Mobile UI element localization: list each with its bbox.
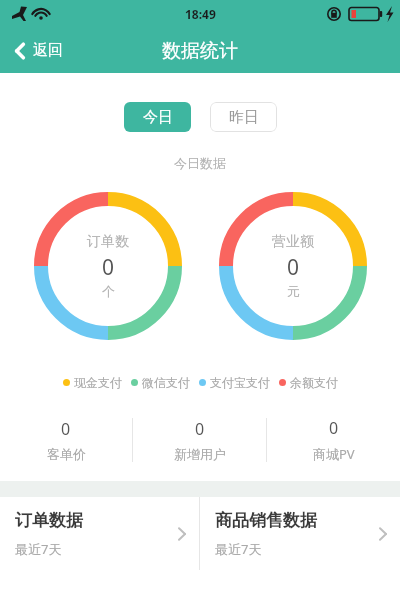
button[interactable]: 返回: [0, 28, 75, 73]
staticText: 个: [102, 283, 115, 299]
staticText: 今日数据: [0, 155, 400, 171]
other: Open 商品销售数据: [378, 525, 388, 543]
staticText: 订单数: [87, 233, 129, 251]
button[interactable]: 0: [0, 413, 132, 467]
staticText: 0: [61, 418, 71, 440]
button[interactable]: 0: [133, 413, 266, 467]
staticText: 0: [329, 417, 339, 439]
staticText: 0: [102, 253, 115, 282]
staticText: 营业额: [272, 233, 314, 251]
staticText: 余额支付: [290, 375, 338, 390]
staticText: 昨日: [229, 108, 259, 127]
staticText: 返回: [33, 41, 63, 60]
staticText: 支付宝支付: [210, 375, 270, 390]
other: Open 订单数据: [177, 525, 187, 543]
button[interactable]: 0: [267, 413, 400, 467]
staticText: 最近7天: [215, 540, 262, 558]
staticText: 数据统计: [162, 39, 238, 63]
staticText: 客单价: [47, 446, 86, 462]
staticText: 最近7天: [15, 540, 62, 558]
staticText: 订单数据: [15, 510, 83, 531]
button[interactable]: 今日: [124, 102, 191, 132]
staticText: 新增用户: [174, 446, 226, 462]
staticText: 商品销售数据: [215, 510, 317, 531]
button[interactable]: 昨日: [210, 102, 277, 132]
staticText: 现金支付: [74, 375, 122, 390]
staticText: 今日: [143, 108, 173, 127]
staticText: 元: [287, 283, 300, 299]
staticText: 0: [195, 418, 205, 440]
button[interactable]: 商品销售数据: [200, 497, 400, 570]
staticText: 微信支付: [142, 375, 190, 390]
button[interactable]: 订单数据: [0, 497, 199, 570]
staticText: 0: [287, 253, 300, 282]
staticText: 18:49: [185, 6, 216, 22]
staticText: 商城PV: [313, 445, 355, 463]
